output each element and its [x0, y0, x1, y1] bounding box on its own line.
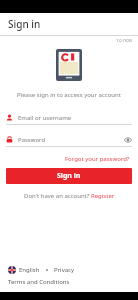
staticText: Email or username — [18, 114, 132, 122]
staticText: Sign in — [8, 17, 41, 31]
button[interactable]: Password — [6, 133, 132, 147]
staticText: Terms and Conditions — [8, 278, 70, 286]
button[interactable]: Email or username — [6, 111, 132, 125]
button[interactable]: English — [8, 264, 40, 276]
staticText: Password — [18, 136, 123, 144]
button[interactable]: Sign in — [6, 168, 132, 184]
button[interactable]: Register — [91, 192, 115, 200]
button[interactable]: Privacy — [54, 264, 75, 276]
button[interactable]: Show password — [123, 135, 132, 144]
button[interactable]: Forgot your password? — [63, 153, 132, 165]
staticText: Register — [91, 192, 115, 200]
staticText: English — [19, 266, 40, 274]
staticText: Don't have an account? — [24, 192, 91, 200]
button[interactable]: Terms and Conditions — [8, 278, 138, 286]
staticText: 1.0 (105) — [116, 38, 132, 43]
staticText: Forgot your password? — [65, 155, 130, 163]
staticText: Privacy — [54, 266, 75, 274]
staticText: Please sign in to access your account — [0, 91, 138, 99]
staticText: Sign in — [57, 171, 81, 181]
